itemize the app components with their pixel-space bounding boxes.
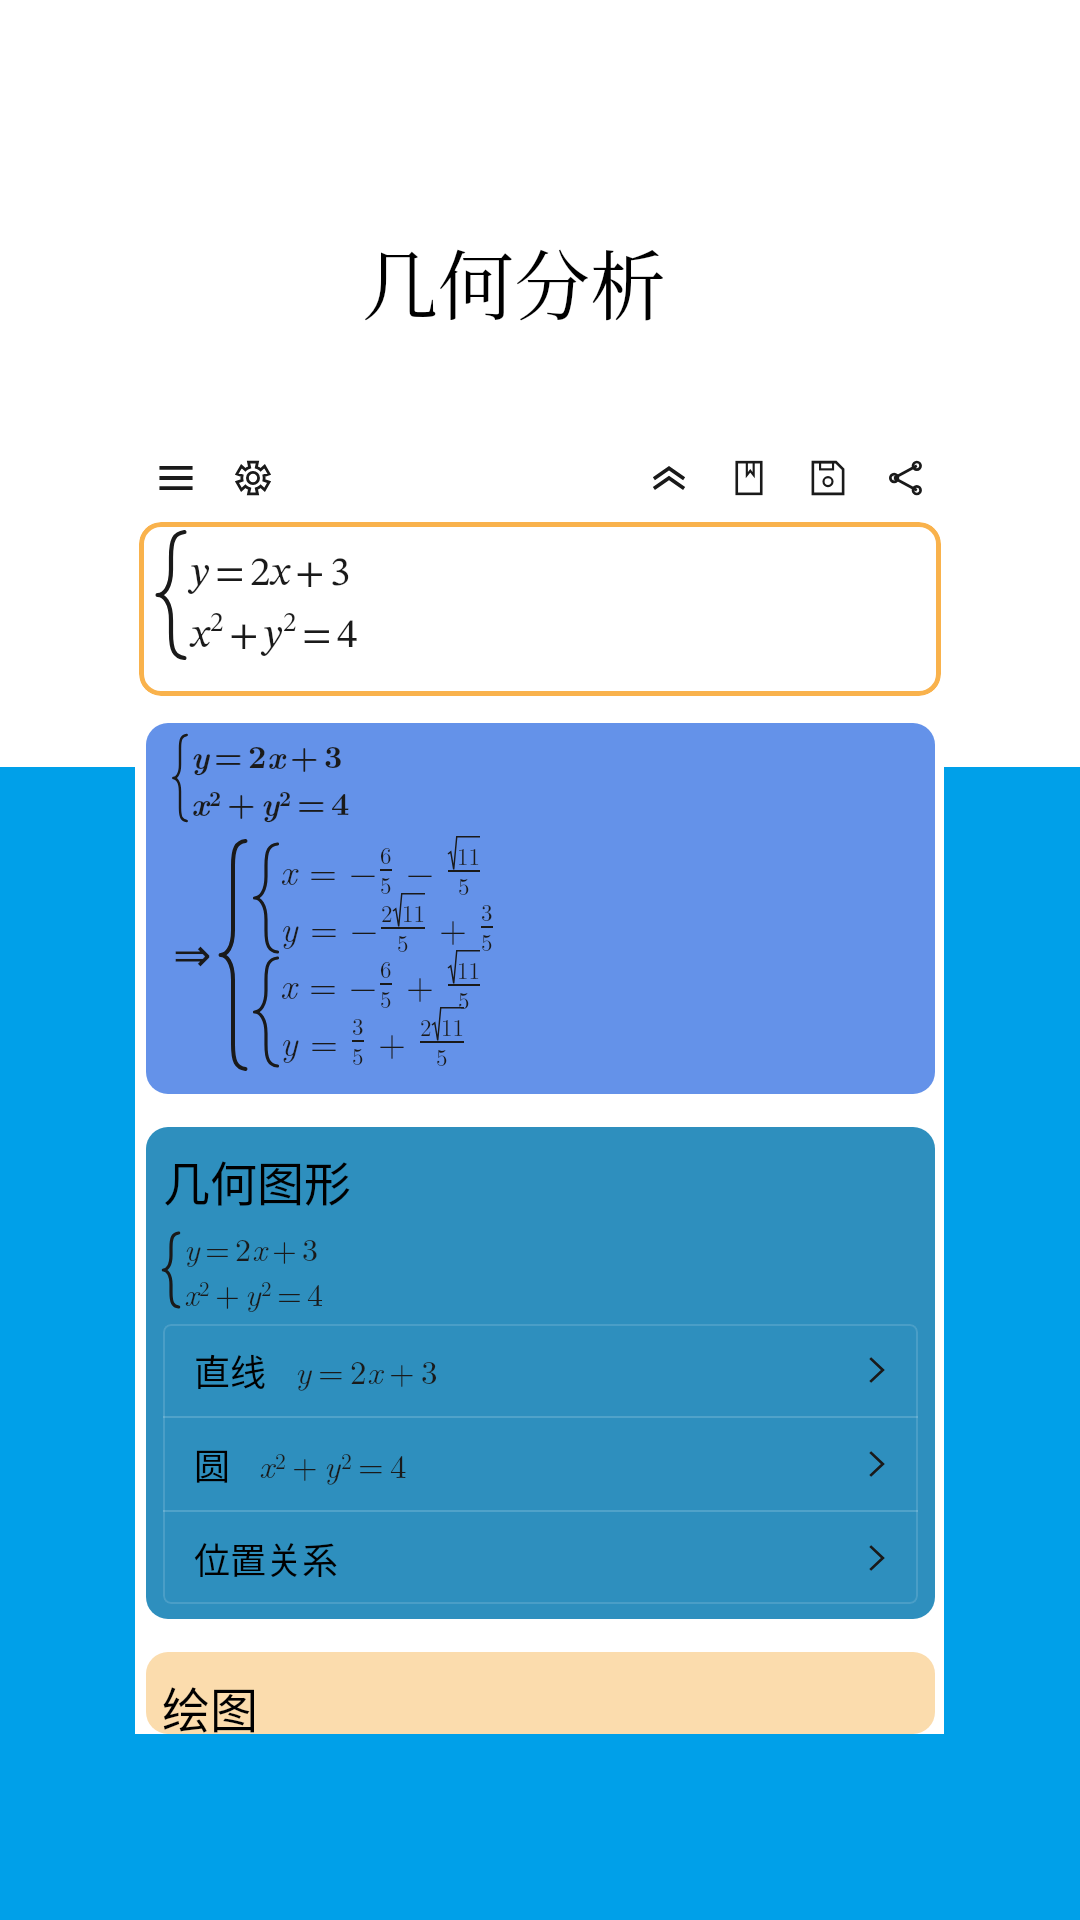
- staticText: x: [271, 554, 290, 595]
- staticText: x: [280, 844, 297, 895]
- staticText: y: [191, 554, 210, 595]
- staticText: 2: [235, 1225, 252, 1270]
- staticText: 6: [380, 838, 392, 871]
- staticText: x: [259, 1441, 275, 1488]
- staticText: 3: [481, 895, 493, 928]
- staticText: −: [349, 958, 378, 1009]
- staticText: =: [358, 1441, 384, 1488]
- staticText: ⇒: [173, 928, 212, 982]
- staticText: 11: [402, 896, 425, 929]
- staticText: x: [191, 616, 210, 657]
- staticText: x: [280, 958, 297, 1009]
- staticText: 3: [324, 732, 343, 778]
- staticText: 4: [390, 1441, 407, 1488]
- staticText: x: [184, 1270, 199, 1315]
- button[interactable]: 圆: [163, 1418, 918, 1510]
- staticText: 5: [352, 1039, 364, 1072]
- staticText: 3: [421, 1347, 438, 1394]
- staticText: x: [267, 731, 285, 778]
- staticText: 几何图形: [163, 1146, 351, 1214]
- button[interactable]: 绘图: [146, 1652, 935, 1734]
- staticText: +: [227, 779, 256, 825]
- staticText: +: [229, 616, 259, 657]
- staticText: y: [295, 1347, 312, 1394]
- staticText: =: [214, 732, 243, 778]
- staticText: 2: [279, 782, 292, 812]
- staticText: 5: [436, 1040, 448, 1073]
- staticText: +: [290, 732, 319, 778]
- staticText: =: [297, 844, 349, 895]
- staticText: y: [245, 1270, 261, 1315]
- staticText: +: [389, 1347, 415, 1394]
- staticText: +: [292, 1441, 318, 1488]
- button[interactable]: Menu: [150, 452, 202, 504]
- button[interactable]: Bookmark: [723, 452, 775, 504]
- staticText: =: [205, 1225, 230, 1270]
- button[interactable]: Collapse: [643, 452, 695, 504]
- staticText: +: [394, 958, 446, 1009]
- staticText: +: [427, 901, 479, 952]
- staticText: y: [264, 616, 283, 657]
- staticText: 5: [380, 868, 392, 901]
- staticText: 2: [341, 1444, 352, 1475]
- staticText: −: [394, 844, 446, 895]
- staticText: 11: [457, 839, 480, 872]
- button[interactable]: Settings: [227, 452, 279, 504]
- staticText: 5: [458, 869, 470, 902]
- staticText: x: [191, 778, 209, 825]
- staticText: =: [297, 958, 349, 1009]
- staticText: −: [349, 844, 378, 895]
- staticText: 5: [380, 982, 392, 1015]
- staticText: 直线: [194, 1344, 267, 1396]
- button[interactable]: y: [146, 723, 935, 1094]
- staticText: =: [318, 1347, 344, 1394]
- staticText: =: [298, 901, 350, 952]
- staticText: x: [367, 1347, 383, 1394]
- staticText: 2: [275, 1444, 286, 1475]
- staticText: −: [350, 901, 379, 952]
- staticText: y: [184, 1225, 200, 1270]
- staticText: 2: [350, 1347, 367, 1394]
- staticText: =: [302, 616, 332, 657]
- button[interactable]: y: [139, 522, 941, 696]
- staticText: 绘图: [162, 1672, 259, 1734]
- button[interactable]: Share: [880, 452, 932, 504]
- staticText: 5: [481, 925, 493, 958]
- staticText: 几何分析: [362, 227, 666, 336]
- button[interactable]: 直线: [163, 1324, 918, 1416]
- staticText: 4: [307, 1270, 324, 1315]
- staticText: 2: [283, 610, 297, 637]
- staticText: x: [252, 1225, 267, 1270]
- staticText: 5: [458, 983, 470, 1016]
- staticText: y: [280, 1015, 298, 1066]
- button[interactable]: Save: [802, 452, 854, 504]
- staticText: 圆: [194, 1438, 231, 1490]
- staticText: 位置关系: [194, 1532, 339, 1584]
- staticText: 2: [250, 554, 271, 595]
- staticText: +: [215, 1270, 240, 1315]
- staticText: +: [366, 1015, 418, 1066]
- staticText: 2: [420, 1010, 432, 1043]
- staticText: 3: [330, 554, 351, 595]
- staticText: =: [298, 1015, 350, 1066]
- staticText: =: [215, 554, 245, 595]
- button[interactable]: 位置关系: [163, 1512, 918, 1604]
- staticText: 2: [248, 732, 267, 778]
- staticText: 2: [381, 896, 393, 929]
- staticText: y: [280, 901, 298, 952]
- staticText: y: [191, 731, 209, 778]
- staticText: 3: [302, 1225, 319, 1270]
- staticText: 4: [337, 616, 358, 657]
- staticText: 2: [210, 610, 224, 637]
- staticText: +: [272, 1225, 297, 1270]
- staticText: 3: [352, 1009, 364, 1042]
- staticText: =: [297, 779, 326, 825]
- staticText: 2: [209, 782, 222, 812]
- staticText: 5: [397, 926, 409, 959]
- staticText: =: [277, 1270, 302, 1315]
- staticText: 2: [199, 1272, 210, 1302]
- staticText: 11: [457, 953, 480, 986]
- staticText: y: [261, 778, 279, 825]
- staticText: 2: [261, 1272, 272, 1302]
- staticText: 6: [380, 952, 392, 985]
